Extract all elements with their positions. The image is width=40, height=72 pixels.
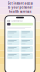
button[interactable]: Health service: [20, 46, 33, 52]
button[interactable]: Search: [11, 23, 33, 25]
button[interactable]: Health service: [20, 53, 33, 59]
button[interactable]: Health service: [7, 46, 19, 52]
button[interactable]: Menu: [7, 23, 10, 25]
button[interactable]: Health service: [20, 31, 33, 38]
button[interactable]: Health service: [20, 39, 33, 45]
staticText: How: [7, 20, 10, 22]
staticText: to your personal: [7, 6, 32, 9]
button[interactable]: Health service: [7, 31, 19, 38]
button[interactable]: Health service: [7, 53, 19, 59]
staticText: health services: [9, 10, 31, 13]
staticText: Get instant access: [7, 2, 32, 5]
staticText: can we help you?: [11, 20, 23, 22]
button[interactable]: Health service: [7, 39, 19, 45]
